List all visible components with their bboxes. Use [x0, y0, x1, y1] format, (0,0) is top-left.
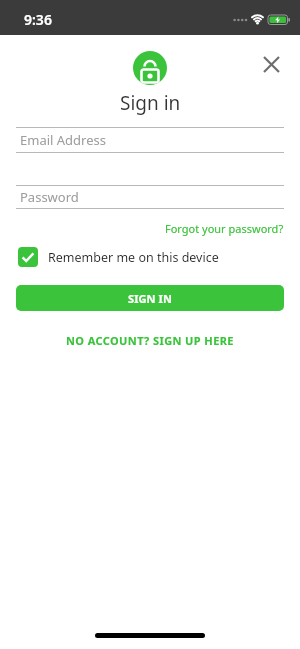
staticText: SIGN IN — [128, 291, 173, 306]
staticText: Sign in — [120, 90, 181, 116]
staticText: NO ACCOUNT? SIGN UP HERE — [66, 333, 234, 348]
button[interactable]: Forgot your password? — [165, 221, 284, 236]
staticText: 9:36 — [24, 10, 52, 29]
staticText: Remember me on this device — [48, 249, 219, 266]
staticText: Email Address — [20, 131, 106, 149]
button[interactable]: Password — [16, 185, 284, 209]
button[interactable]: Email Address — [16, 127, 284, 153]
button[interactable] — [250, 43, 292, 85]
staticText: Password — [20, 188, 79, 206]
button[interactable]: NO ACCOUNT? SIGN UP HERE — [0, 333, 300, 348]
button[interactable]: SIGN IN — [16, 285, 284, 311]
staticText: Forgot your password? — [165, 221, 284, 236]
button[interactable]: Remember me on this device — [18, 247, 219, 267]
